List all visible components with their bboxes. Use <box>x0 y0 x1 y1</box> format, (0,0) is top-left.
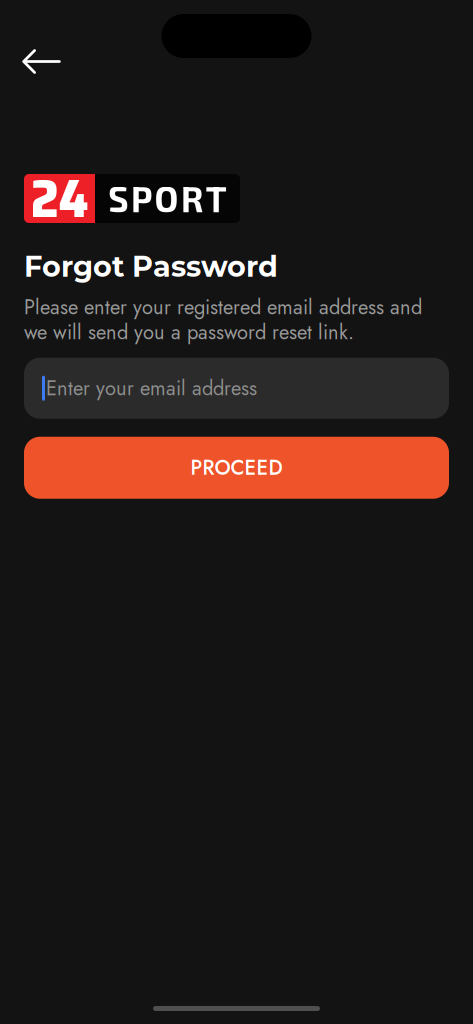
staticText: Enter your email address <box>46 374 257 403</box>
staticText: PROCEED <box>190 453 282 482</box>
staticText: Please enter your registered email addre… <box>24 293 422 347</box>
staticText: SPORT <box>108 178 227 219</box>
button[interactable]: Back <box>0 0 69 79</box>
button[interactable]: PROCEED <box>24 437 449 499</box>
staticText: 24 <box>30 156 88 240</box>
staticText: Forgot Password <box>24 249 278 284</box>
